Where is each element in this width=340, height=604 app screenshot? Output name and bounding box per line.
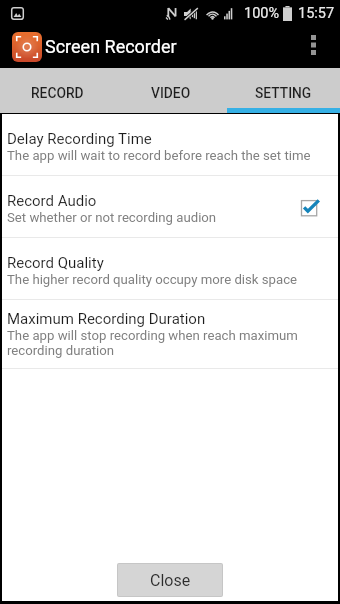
button[interactable]: Record Audio [2,176,338,237]
staticText: Record Audio [7,192,97,210]
staticText: RECORD [31,85,84,101]
staticText: The app will stop recording when reach m… [7,328,329,358]
button[interactable]: Record Quality [2,238,338,299]
button[interactable]: More options [286,26,340,68]
staticText: SETTING [255,85,312,101]
staticText: Record Quality [7,254,104,272]
button[interactable]: VIDEO [114,68,227,113]
staticText: Maximum Recording Duration [7,310,206,328]
button[interactable]: SETTING [227,68,340,113]
button[interactable]: Delay Recording Time [2,114,338,175]
staticText: Screen Recorder [45,36,177,57]
button[interactable]: RECORD [0,68,114,113]
staticText: 15:57 [298,5,335,22]
staticText: VIDEO [151,85,191,101]
staticText: The app will wait to record before reach… [7,148,311,163]
staticText: 100% [244,5,280,22]
staticText: Set whether or not recording audion [7,210,217,225]
button[interactable]: Maximum Recording Duration [2,300,338,368]
staticText: Delay Recording Time [7,130,152,148]
button[interactable]: Close [118,564,222,596]
staticText: The higher record quality occupy more di… [7,272,298,287]
staticText: Close [150,571,191,590]
